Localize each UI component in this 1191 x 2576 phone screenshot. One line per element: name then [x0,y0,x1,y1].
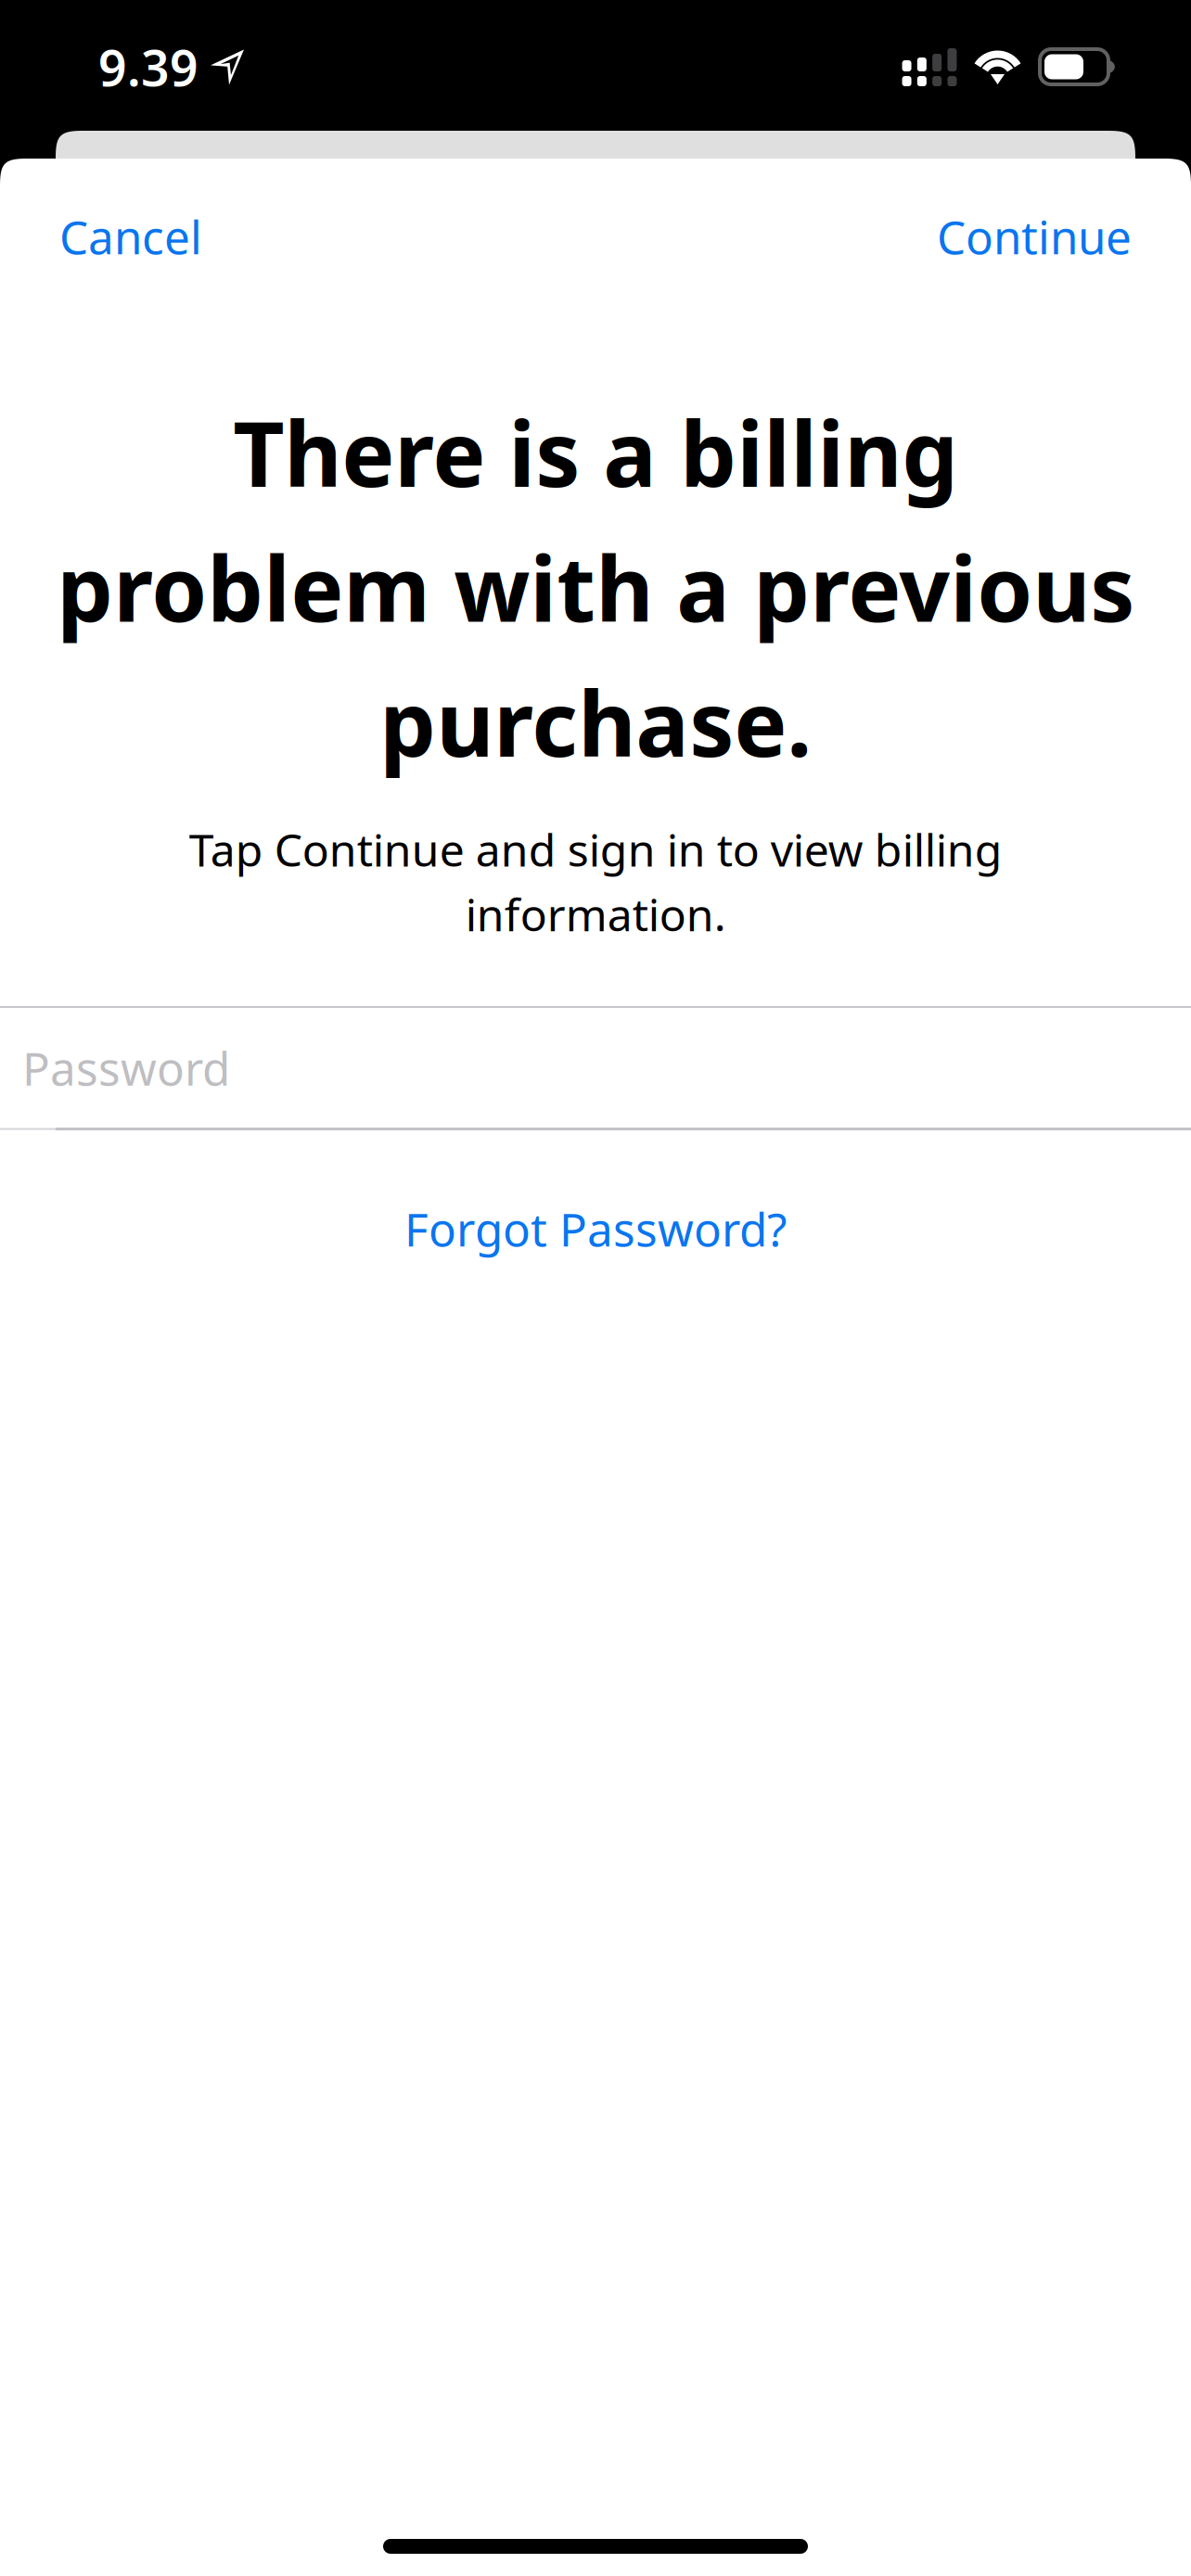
staticText: Tap Continue and sign in to view billing… [189,820,1002,944]
staticText: 9.39 [98,34,198,100]
button[interactable]: Password [0,1008,1191,1128]
button[interactable]: Continue [872,185,1191,287]
staticText: Forgot Password? [404,1198,787,1259]
button[interactable]: Forgot Password? [367,1182,824,1275]
staticText: Password [22,1037,230,1098]
button[interactable]: Cancel [0,185,319,287]
staticText: Cancel [59,206,202,267]
staticText: There is a billing problem with a previo… [57,393,1134,781]
staticText: Continue [937,206,1132,267]
